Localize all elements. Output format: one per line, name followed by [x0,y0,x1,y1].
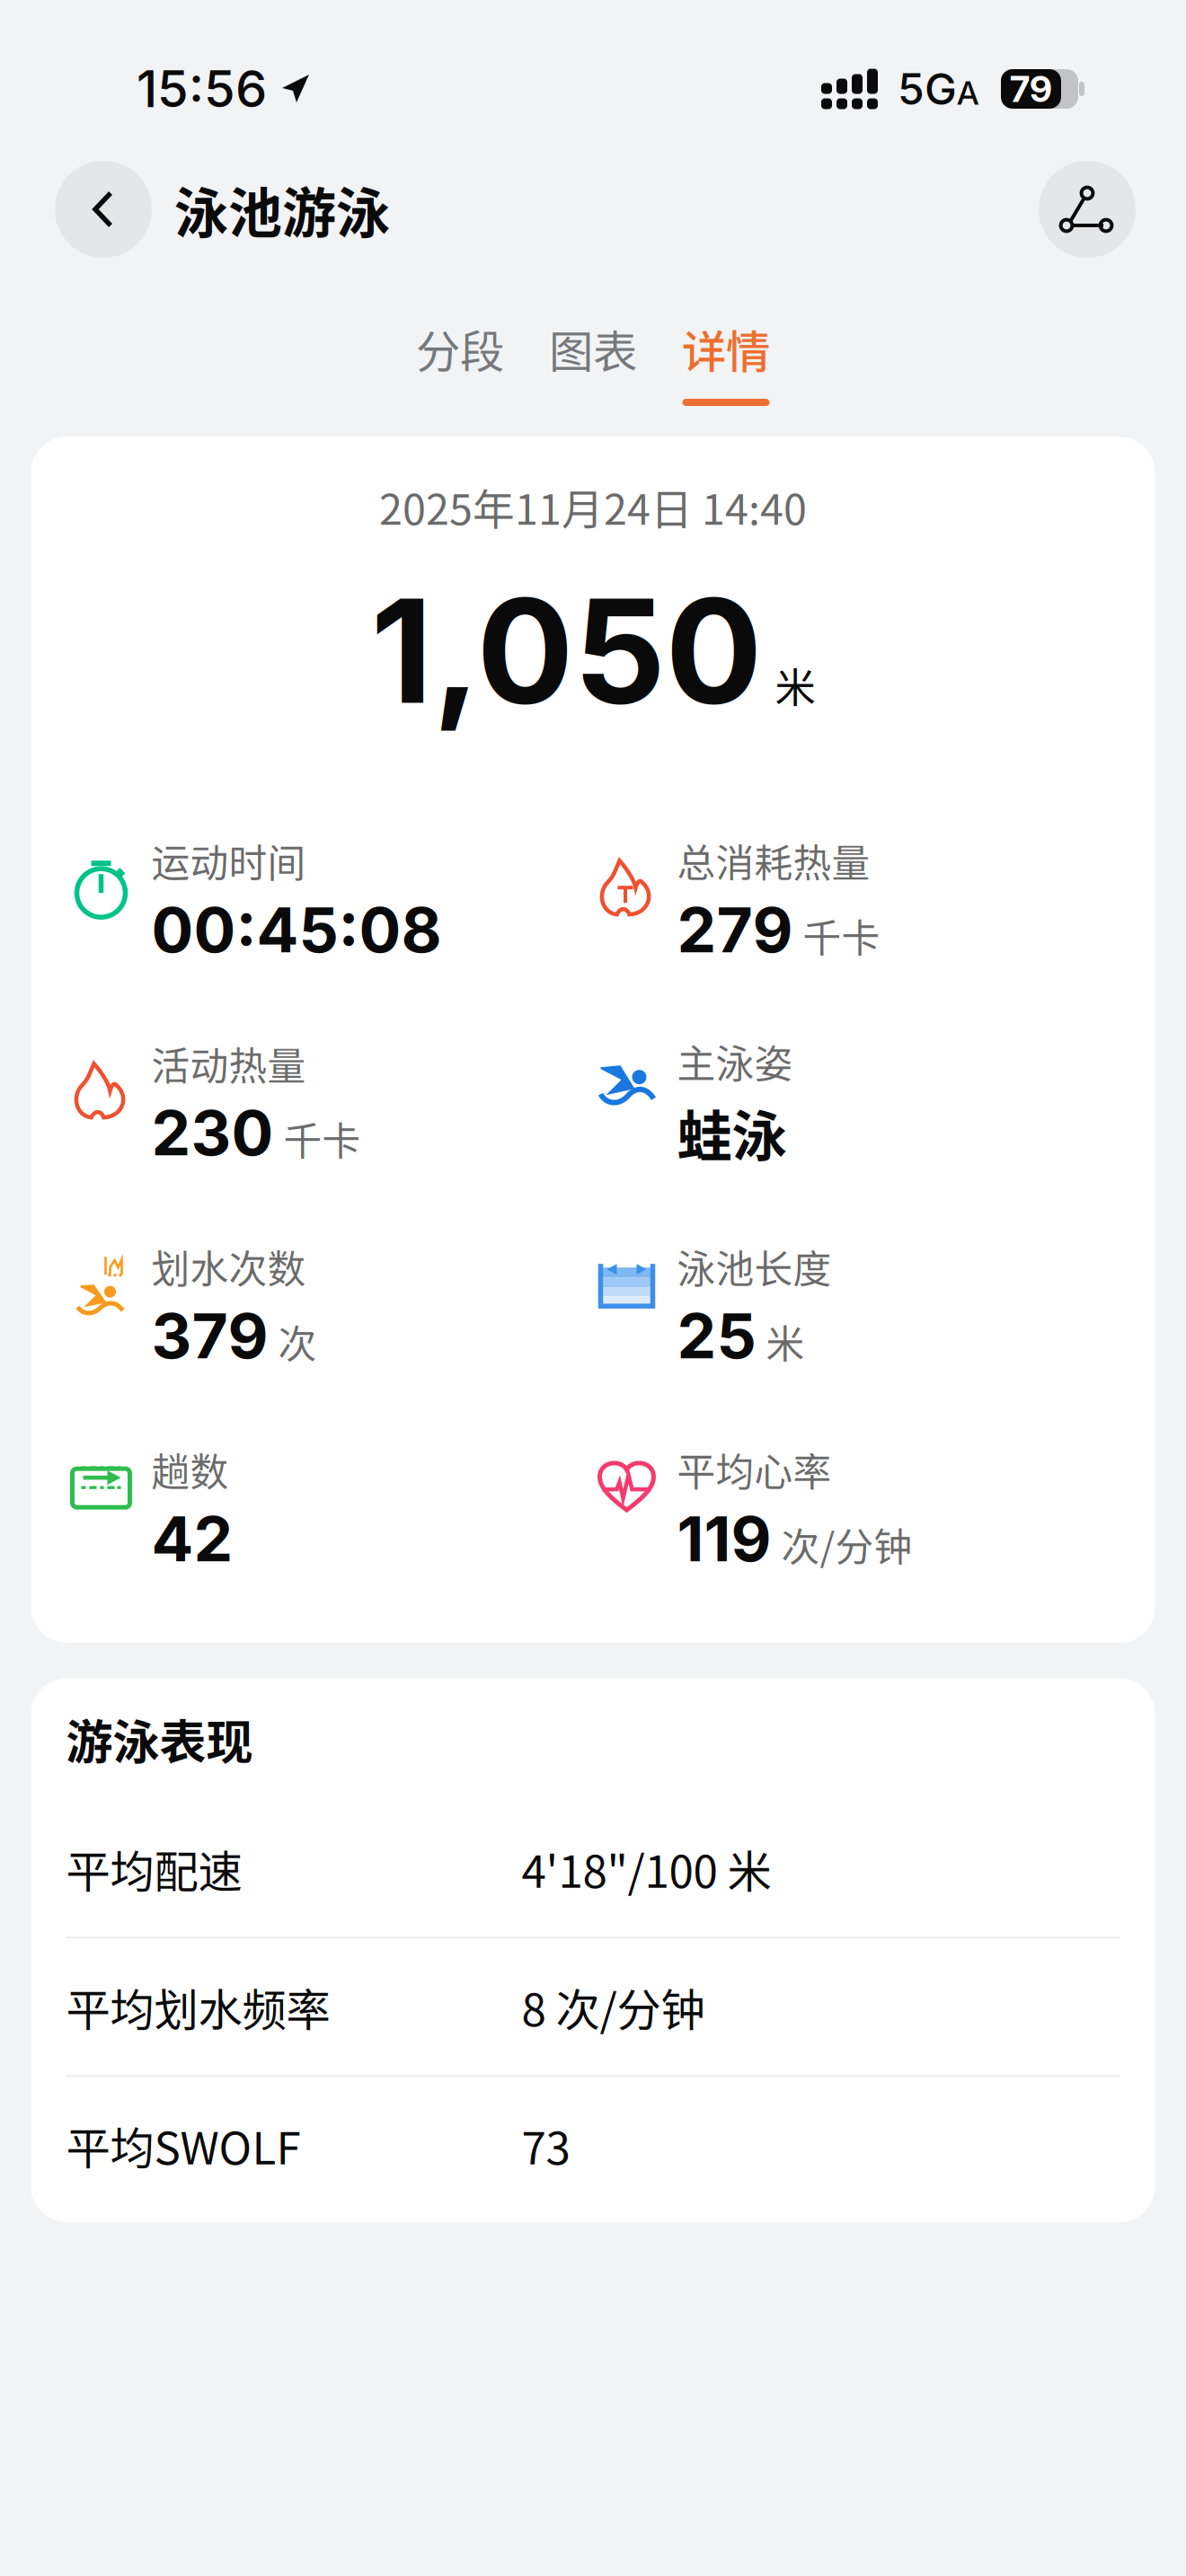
staticText: 游泳表现 [66,1705,253,1773]
staticText: A [957,73,979,112]
button[interactable]: 详情 [659,296,792,406]
staticText: 15:56 [137,58,267,119]
staticText: 总消耗热量 [677,833,870,888]
staticText: 运动时间 [151,833,306,888]
staticText: 1,050 [371,564,762,738]
staticText: 平均心率 [677,1442,832,1497]
staticText: 4'18"/100 米 [522,1836,771,1900]
button[interactable]: Share [1039,161,1136,258]
staticText: 米 [766,1314,805,1369]
staticText: 次/分钟 [781,1517,912,1572]
staticText: 119 [677,1501,771,1576]
staticText: 8 次/分钟 [522,1975,705,2039]
staticText: 279 [677,892,793,967]
staticText: 千卡 [283,1111,361,1166]
staticText: 00:45:08 [151,892,442,967]
staticText: 79 [1010,67,1052,111]
staticText: 图表 [549,316,637,381]
staticText: 平均SWOLF [66,2113,301,2177]
staticText: 详情 [682,316,770,381]
button[interactable]: 图表 [527,296,659,406]
button[interactable]: Back [55,161,152,258]
staticText: 42 [151,1501,233,1576]
staticText: 次 [278,1314,317,1369]
staticText: 230 [151,1095,274,1170]
staticText: 趟数 [151,1442,229,1497]
staticText: 分段 [416,316,504,381]
staticText: 划水次数 [151,1239,306,1294]
staticText: 米 [775,656,815,715]
staticText: 平均划水频率 [66,1975,330,2039]
staticText: 25 [677,1298,756,1373]
staticText: 主泳姿 [677,1034,793,1089]
staticText: 379 [151,1298,268,1373]
staticText: 泳池游泳 [174,170,390,248]
staticText: 平均配速 [66,1836,242,1900]
staticText: 千卡 [803,908,880,963]
staticText: 73 [522,2113,570,2177]
staticText: 蛙泳 [677,1093,787,1173]
staticText: 泳池长度 [677,1239,832,1294]
staticText: 5G [898,63,957,115]
staticText: 2025年11月24日 14:40 [379,476,807,537]
button[interactable]: 分段 [394,296,527,406]
staticText: 活动热量 [151,1036,306,1091]
